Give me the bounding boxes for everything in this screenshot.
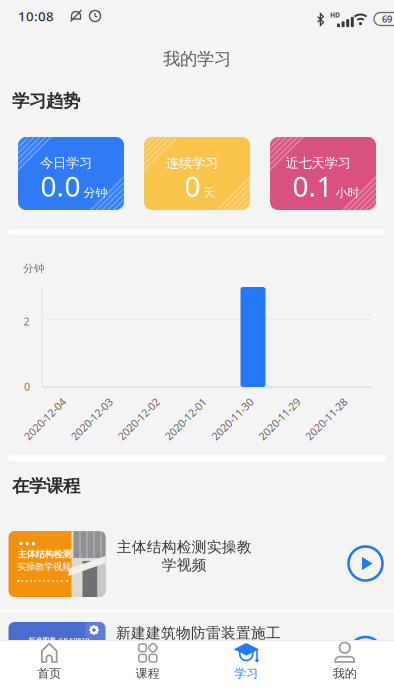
staticText: 0 [184,167,200,205]
staticText: 2020-12-02 [112,412,166,426]
staticText: 今日学习 [40,155,92,171]
staticText: 小时 [335,185,359,200]
button[interactable]: 课程 [98,640,197,700]
staticText: 我的学习 [163,48,231,70]
button[interactable]: 我的 [295,640,394,700]
button[interactable]: 主体结构检测 [0,520,394,608]
staticText: 天 [203,185,215,200]
staticText: 0.0 [40,167,80,205]
staticText: 2 [24,314,30,328]
staticText: 2020-11-29 [252,412,306,426]
staticText: 主体结构检测 [17,548,71,560]
staticText: 分钟 [83,185,107,200]
staticText: 学习趋势 [12,90,80,112]
staticText: 10:08 [18,7,54,25]
staticText: 69 [382,13,392,25]
button[interactable]: 播放 [348,546,382,580]
staticText: 2020-11-30 [205,412,259,426]
staticText: 近七天学习 [285,155,350,171]
staticText: 2020-12-01 [159,412,213,426]
button[interactable]: 标准图集 GB-50610 [0,622,394,688]
staticText: 首页 [37,666,61,681]
staticText: 实操教学视频 [17,561,71,572]
staticText: 0.1 [292,167,332,205]
staticText: 0 [24,379,30,394]
staticText: 2020-11-28 [299,412,353,426]
staticText: 2020-12-04 [18,412,72,426]
staticText: 标准图集 GB-50610 [28,635,89,644]
staticText: 连续学习 [166,155,218,171]
staticText: 2020-12-03 [65,412,119,426]
staticText: HD [330,10,340,19]
staticText: 在学课程 [12,475,80,497]
staticText: 课程 [136,666,160,681]
staticText: 新建建筑物防雷装置施工 [116,624,281,642]
staticText: 分钟 [23,262,45,275]
staticText: 我的 [333,666,357,681]
staticText: 主体结构检测实操教 学视频 [116,538,251,574]
button[interactable]: 首页 [0,640,98,700]
staticText: 学习 [234,666,258,681]
button[interactable]: 学习 [197,640,295,700]
